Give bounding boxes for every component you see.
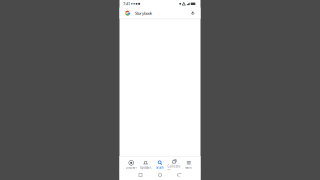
staticText: Collections <box>167 165 181 172</box>
button[interactable]: Collections <box>167 157 182 170</box>
staticText: Storybook <box>135 10 152 16</box>
button[interactable]: Back <box>170 170 189 180</box>
button[interactable]: Home <box>150 170 170 180</box>
button[interactable]: More <box>182 157 196 170</box>
button[interactable]: Updates <box>138 157 153 170</box>
staticText: Search <box>156 166 164 169</box>
button[interactable]: Storybook <box>119 8 200 19</box>
staticText: More <box>185 166 192 169</box>
button[interactable]: Discover <box>124 157 138 170</box>
staticText: Discover <box>126 166 137 169</box>
button[interactable]: Search <box>153 157 167 170</box>
staticText: Updates <box>140 166 151 169</box>
button[interactable]: Recent apps <box>131 170 150 180</box>
staticText: 7:41 <box>123 1 130 6</box>
